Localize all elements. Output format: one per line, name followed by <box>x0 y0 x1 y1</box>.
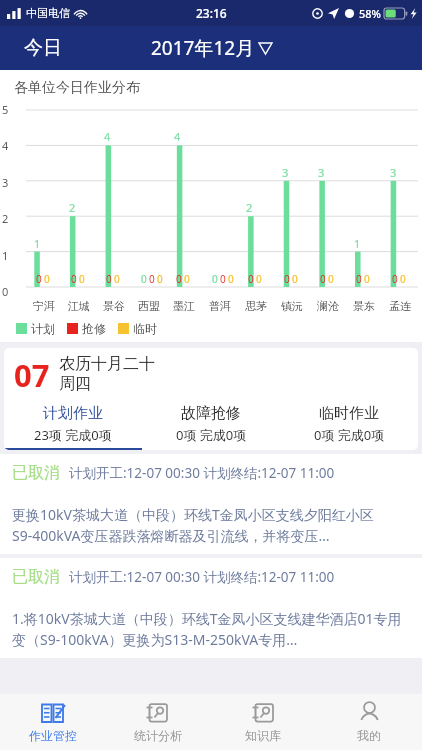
button[interactable]: 已取消 <box>0 558 422 658</box>
button[interactable]: 统计分析 <box>105 694 210 750</box>
staticText: 0 <box>36 272 42 286</box>
staticText: 1 <box>2 248 9 262</box>
button[interactable]: 今日 <box>18 32 68 64</box>
staticText: 各单位今日作业分布 <box>14 79 140 97</box>
staticText: 已取消 <box>12 567 60 587</box>
staticText: 3 <box>2 175 9 189</box>
button[interactable]: 临时作业 <box>280 402 418 450</box>
staticText: 4 <box>104 129 111 144</box>
button[interactable]: 故障抢修 <box>142 402 280 450</box>
staticText: 0 <box>44 272 50 286</box>
staticText: 计划开工:12-07 00:30 计划终结:12-07 11:00 <box>69 464 335 482</box>
button[interactable]: 2017年12月 <box>143 31 280 65</box>
staticText: 统计分析 <box>134 728 182 743</box>
staticText: 0 <box>79 272 85 286</box>
staticText: 江城 <box>68 299 90 313</box>
staticText: 1 <box>34 236 41 251</box>
staticText: 2 <box>2 211 9 225</box>
staticText: 0项 完成0项 <box>176 426 247 444</box>
staticText: 2 <box>246 200 253 215</box>
staticText: 0 <box>256 272 262 286</box>
staticText: 3 <box>282 165 289 180</box>
staticText: 3 <box>318 165 325 180</box>
staticText: 0 <box>212 272 218 286</box>
staticText: 作业管控 <box>29 728 77 743</box>
button[interactable]: 作业管控 <box>0 694 105 750</box>
staticText: 0 <box>176 272 182 286</box>
staticText: 故障抢修 <box>181 404 241 423</box>
staticText: 2017年12月 <box>151 35 255 61</box>
button[interactable]: 我的 <box>316 694 422 750</box>
staticText: 0 <box>364 272 370 286</box>
button[interactable]: 知识库 <box>210 694 316 750</box>
staticText: 0 <box>2 284 9 298</box>
staticText: 0 <box>356 272 362 286</box>
staticText: 0 <box>220 272 226 286</box>
staticText: 宁洱 <box>33 299 55 313</box>
staticText: 今日 <box>24 36 62 60</box>
staticText: 知识库 <box>245 728 281 743</box>
staticText: 镇沅 <box>281 299 303 313</box>
staticText: 墨江 <box>173 299 195 313</box>
staticText: 23:16 <box>196 5 227 21</box>
staticText: 0 <box>292 272 298 286</box>
staticText: 23项 完成0项 <box>34 426 112 444</box>
staticText: 中国电信 <box>26 6 70 20</box>
staticText: 58% <box>359 6 381 21</box>
staticText: 07 <box>14 354 50 396</box>
staticText: 2 <box>69 200 76 215</box>
button[interactable]: 已取消 <box>0 454 422 554</box>
staticText: 计划 <box>31 321 55 336</box>
staticText: 计划作业 <box>43 404 103 423</box>
staticText: 抢修 <box>82 321 106 336</box>
staticText: 我的 <box>357 728 381 743</box>
staticText: 0 <box>141 272 147 286</box>
staticText: 3 <box>390 165 397 180</box>
staticText: 澜沧 <box>317 299 339 313</box>
staticText: 0 <box>71 272 77 286</box>
staticText: 0项 完成0项 <box>314 426 385 444</box>
staticText: 周四 <box>59 374 91 394</box>
staticText: 临时 <box>133 321 157 336</box>
staticText: 0 <box>184 272 190 286</box>
staticText: 0 <box>248 272 254 286</box>
staticText: 0 <box>320 272 326 286</box>
staticText: 计划开工:12-07 00:30 计划终结:12-07 11:00 <box>69 568 335 586</box>
staticText: 0 <box>328 272 334 286</box>
staticText: 0 <box>284 272 290 286</box>
staticText: 更换10kV茶城大道（中段）环线T金凤小区支线夕阳红小区S9-400kVA变压器… <box>12 505 410 545</box>
staticText: 4 <box>174 129 181 144</box>
staticText: 0 <box>228 272 234 286</box>
staticText: 0 <box>149 272 155 286</box>
staticText: 0 <box>400 272 406 286</box>
staticText: 思茅 <box>245 299 267 313</box>
staticText: 5 <box>2 102 9 116</box>
staticText: 0 <box>392 272 398 286</box>
staticText: 农历十月二十 <box>59 354 155 374</box>
staticText: 景东 <box>353 299 375 313</box>
staticText: 普洱 <box>209 299 231 313</box>
staticText: 4 <box>2 138 9 152</box>
staticText: 景谷 <box>103 299 125 313</box>
staticText: 已取消 <box>12 463 60 483</box>
staticText: 孟连 <box>389 299 411 313</box>
staticText: 临时作业 <box>319 404 379 423</box>
staticText: 西盟 <box>138 299 160 313</box>
staticText: 1.将10kV茶城大道（中段）环线T金凤小区支线建华酒店01专用变（S9-100… <box>12 609 410 649</box>
staticText: 0 <box>106 272 112 286</box>
button[interactable]: 计划作业 <box>4 402 142 450</box>
staticText: 0 <box>114 272 120 286</box>
staticText: 0 <box>157 272 163 286</box>
staticText: 1 <box>354 236 361 251</box>
